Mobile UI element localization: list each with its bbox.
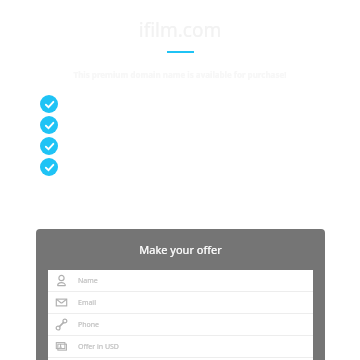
staticText: Phone <box>78 320 100 330</box>
button[interactable]: Email <box>48 292 313 313</box>
staticText: Offer in USD <box>78 342 119 352</box>
staticText: Email <box>78 298 96 308</box>
button[interactable]: Included feature <box>40 137 58 155</box>
button[interactable]: Offer in USD <box>48 336 313 357</box>
button[interactable]: Included feature <box>40 158 58 176</box>
button[interactable]: Included feature <box>40 95 58 113</box>
button[interactable]: Included feature <box>40 116 58 134</box>
button[interactable]: Phone <box>48 314 313 335</box>
button[interactable]: Name <box>48 270 313 291</box>
button[interactable]: Make your offer <box>36 229 325 270</box>
staticText: Name <box>78 276 98 286</box>
staticText: Make your offer <box>139 242 222 257</box>
